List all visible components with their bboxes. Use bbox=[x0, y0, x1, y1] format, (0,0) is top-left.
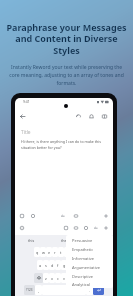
staticText: u bbox=[72, 250, 75, 255]
button[interactable]: k bbox=[79, 260, 85, 270]
staticText: x bbox=[51, 276, 54, 281]
button[interactable]: a bbox=[37, 260, 43, 270]
staticText: r bbox=[54, 250, 56, 255]
staticText: v bbox=[63, 276, 65, 281]
button[interactable]: Informative bbox=[72, 254, 113, 263]
button[interactable]: m bbox=[79, 273, 85, 283]
button[interactable]: More options bbox=[99, 111, 110, 122]
button[interactable]: p bbox=[88, 247, 94, 257]
staticText: t bbox=[60, 250, 62, 255]
button[interactable]: Persuasive bbox=[72, 236, 113, 245]
button[interactable]: g bbox=[61, 260, 67, 270]
button[interactable]: ?123 bbox=[24, 285, 35, 295]
staticText: s bbox=[45, 263, 47, 268]
button[interactable]: z bbox=[43, 273, 49, 283]
button[interactable]: the bbox=[47, 235, 80, 245]
button[interactable]: to bbox=[80, 235, 113, 245]
button[interactable]: q bbox=[34, 247, 40, 257]
staticText: k bbox=[81, 263, 84, 268]
button[interactable]: Keyboard tool bbox=[59, 212, 67, 220]
staticText: d bbox=[51, 263, 54, 268]
button[interactable]: n bbox=[73, 273, 79, 283]
staticText: Instantly Reword your text while preserv… bbox=[9, 64, 124, 87]
button[interactable]: x bbox=[49, 273, 55, 283]
staticText: the bbox=[61, 238, 67, 243]
button[interactable]: Keyboard tool bbox=[92, 224, 100, 232]
staticText: Empathetic bbox=[72, 247, 94, 252]
button[interactable]: . bbox=[86, 285, 93, 295]
button[interactable]: s bbox=[43, 260, 49, 270]
staticText: , bbox=[38, 288, 40, 293]
button[interactable]: Keyboard tool bbox=[62, 224, 70, 232]
staticText: l bbox=[88, 263, 89, 268]
staticText: . bbox=[89, 288, 91, 293]
staticText: a bbox=[39, 263, 42, 268]
button[interactable]: Keyboard tool bbox=[102, 212, 110, 220]
staticText: w bbox=[42, 250, 45, 255]
button[interactable]: Keyboard tool bbox=[72, 212, 80, 220]
staticText: 9:41 bbox=[23, 99, 30, 104]
staticText: Paraphrase your Messages and Content in … bbox=[6, 21, 127, 57]
button[interactable]: b bbox=[67, 273, 73, 283]
button[interactable]: , bbox=[35, 285, 42, 295]
staticText: m bbox=[80, 276, 84, 281]
button[interactable]: Analytical bbox=[72, 281, 113, 288]
button[interactable]: i bbox=[76, 247, 82, 257]
button[interactable]: Keyboard tool bbox=[29, 212, 37, 220]
staticText: z bbox=[45, 276, 47, 281]
button[interactable]: h bbox=[67, 260, 73, 270]
staticText: j bbox=[76, 263, 77, 268]
button[interactable]: Keyboard tool bbox=[82, 224, 90, 232]
staticText: f bbox=[57, 263, 59, 268]
staticText: c bbox=[57, 276, 59, 281]
button[interactable]: v bbox=[61, 273, 67, 283]
staticText: i bbox=[79, 250, 80, 255]
staticText: Analytical bbox=[72, 282, 91, 287]
button[interactable]: w bbox=[40, 247, 46, 257]
staticText: ?123 bbox=[26, 288, 33, 292]
staticText: e bbox=[48, 250, 51, 255]
button[interactable]: Keyboard tool bbox=[18, 224, 26, 232]
button[interactable]: Back bbox=[17, 111, 28, 122]
button[interactable]: Enter bbox=[93, 285, 104, 295]
button[interactable]: Keyboard tool bbox=[18, 212, 26, 220]
staticText: Argumentative bbox=[72, 265, 101, 270]
button[interactable]: f bbox=[55, 260, 61, 270]
button[interactable]: t bbox=[58, 247, 64, 257]
staticText: Title bbox=[21, 129, 31, 136]
button[interactable]: u bbox=[70, 247, 76, 257]
staticText: o bbox=[84, 250, 87, 255]
staticText: Informative bbox=[72, 256, 95, 261]
staticText: Descriptive bbox=[72, 274, 93, 279]
button[interactable]: Space bbox=[42, 285, 86, 295]
button[interactable]: c bbox=[55, 273, 61, 283]
button[interactable]: Backspace bbox=[85, 273, 94, 283]
staticText: this bbox=[28, 238, 35, 243]
staticText: Persuasive bbox=[72, 238, 93, 243]
button[interactable]: Undo bbox=[73, 111, 84, 122]
staticText: Hi there, is there anything I can do to … bbox=[21, 139, 109, 150]
button[interactable]: e bbox=[46, 247, 52, 257]
button[interactable]: d bbox=[49, 260, 55, 270]
button[interactable]: j bbox=[73, 260, 79, 270]
staticText: p bbox=[90, 250, 93, 255]
button[interactable]: Argumentative bbox=[72, 263, 113, 272]
button[interactable]: Notifications bbox=[86, 111, 97, 122]
button[interactable]: Keyboard tool bbox=[102, 224, 110, 232]
button[interactable]: o bbox=[82, 247, 88, 257]
staticText: q bbox=[36, 250, 39, 255]
button[interactable]: l bbox=[85, 260, 91, 270]
staticText: g bbox=[63, 263, 66, 268]
staticText: n bbox=[75, 276, 78, 281]
button[interactable]: Shift bbox=[34, 273, 43, 283]
button[interactable]: Keyboard tool bbox=[72, 224, 80, 232]
button[interactable]: Empathetic bbox=[72, 245, 113, 254]
button[interactable]: this bbox=[15, 235, 47, 245]
button[interactable]: r bbox=[52, 247, 58, 257]
button[interactable]: Descriptive bbox=[72, 272, 113, 281]
